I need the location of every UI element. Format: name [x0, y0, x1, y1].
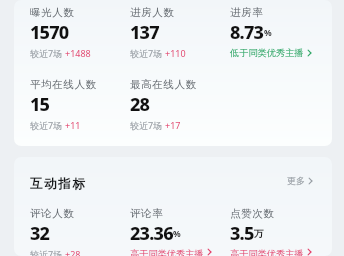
staticText: 点赞次数 [230, 207, 275, 220]
staticText: 高于同类优秀主播 [230, 248, 304, 256]
staticText: 平均在线人数 [30, 78, 97, 91]
button[interactable]: 高于同类优秀主播 [230, 248, 312, 256]
staticText: 较近7场 [30, 47, 63, 59]
staticText: 较近7场 [30, 248, 63, 256]
staticText: 15 [30, 92, 50, 117]
staticText: 高于同类优秀主播 [130, 248, 204, 256]
staticText: 评论人数 [30, 207, 75, 220]
staticText: 万 [254, 228, 264, 240]
staticText: 评论率 [130, 207, 164, 220]
staticText: +110 [165, 47, 186, 59]
staticText: +17 [165, 119, 181, 131]
staticText: % [173, 228, 181, 240]
staticText: 进房率 [230, 6, 264, 19]
staticText: 1570 [30, 20, 69, 45]
staticText: 低于同类优秀主播 [230, 47, 304, 59]
button[interactable]: 低于同类优秀主播 [230, 47, 312, 59]
staticText: +28 [65, 248, 81, 256]
staticText: 较近7场 [130, 119, 163, 131]
staticText: 137 [130, 20, 159, 45]
button[interactable]: 更多 [287, 175, 313, 186]
staticText: 23.36 [130, 221, 173, 246]
button[interactable]: 高于同类优秀主播 [130, 248, 212, 256]
staticText: % [264, 27, 272, 39]
staticText: 8.73 [230, 20, 264, 45]
staticText: 较近7场 [30, 119, 63, 131]
staticText: 3.5 [230, 221, 254, 246]
staticText: 较近7场 [130, 47, 163, 59]
staticText: 互动指标 [30, 176, 87, 192]
staticText: +1488 [65, 47, 91, 59]
staticText: +11 [65, 119, 81, 131]
staticText: 28 [130, 92, 150, 117]
staticText: 进房人数 [130, 6, 175, 19]
staticText: 最高在线人数 [130, 78, 197, 91]
staticText: 32 [30, 221, 50, 246]
staticText: 曝光人数 [30, 6, 75, 19]
staticText: 更多 [287, 175, 305, 186]
